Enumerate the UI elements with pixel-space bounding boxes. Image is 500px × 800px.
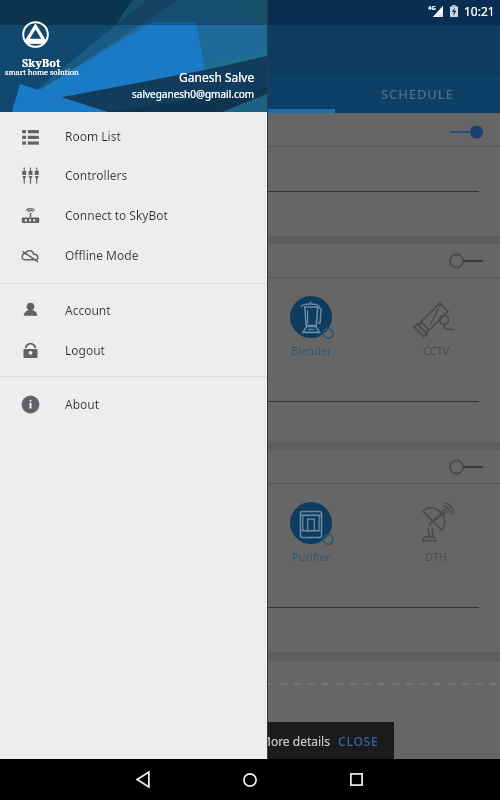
button[interactable]: DEVICES <box>130 74 350 113</box>
staticText: Connect to SkyBot <box>65 207 168 223</box>
button[interactable]: Recent apps <box>334 759 378 800</box>
button[interactable]: Purifier <box>287 499 335 564</box>
staticText: Blender <box>291 343 332 358</box>
staticText: Account <box>65 302 111 318</box>
staticText: smart home solution <box>5 67 79 77</box>
staticText: salveganesh0@gmail.com <box>132 87 255 101</box>
button[interactable]: Blender <box>287 293 335 358</box>
staticText: Ganesh Salve <box>179 69 255 85</box>
staticText: CLOSE <box>338 733 379 749</box>
staticText: DTH <box>425 549 447 564</box>
staticText: SCHEDULE <box>381 85 454 103</box>
button[interactable]: Home <box>228 759 272 800</box>
button[interactable]: Connect to SkyBot <box>0 195 267 235</box>
staticText: 4G <box>428 4 436 12</box>
button[interactable]: Offline Mode <box>0 235 267 275</box>
button[interactable] <box>0 116 500 147</box>
button[interactable]: Account <box>0 290 267 330</box>
button[interactable]: More details <box>0 722 394 759</box>
button[interactable]: DTH <box>412 499 460 564</box>
button[interactable]: Logout <box>0 330 267 370</box>
button[interactable] <box>0 244 500 277</box>
button[interactable]: About <box>0 384 267 424</box>
staticText: 10:21 <box>464 3 495 19</box>
button[interactable]: SCHEDULE <box>307 74 500 113</box>
staticText: More details <box>260 733 330 749</box>
button[interactable]: Back <box>121 759 165 800</box>
button[interactable]: Room List <box>0 116 267 156</box>
staticText: Offline Mode <box>65 247 139 263</box>
staticText: Logout <box>65 342 105 358</box>
staticText: DEVICES <box>181 85 240 103</box>
staticText: CCTV <box>423 343 450 358</box>
staticText: Purifier <box>292 549 331 564</box>
staticText: About <box>65 396 100 412</box>
staticText: SkyBot <box>22 55 61 70</box>
button[interactable]: CCTV <box>412 293 460 358</box>
staticText: Room List <box>65 128 121 144</box>
button[interactable]: Controllers <box>0 155 267 195</box>
staticText: Controllers <box>65 167 128 183</box>
button[interactable] <box>0 450 500 483</box>
